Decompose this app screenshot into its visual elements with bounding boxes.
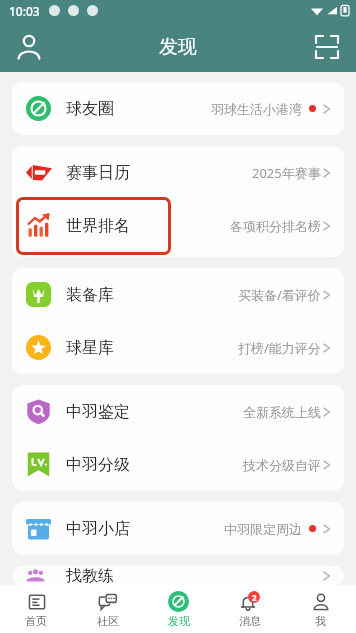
button[interactable]: 2 (214, 585, 285, 633)
button[interactable]: 赛事日历 (12, 146, 344, 199)
staticText: 球友圈 (66, 99, 114, 119)
button[interactable]: 装备库 (12, 268, 344, 321)
staticText: 找教练 (66, 566, 114, 585)
button[interactable]: 找教练 (12, 566, 344, 585)
button[interactable]: 发现 (143, 585, 214, 633)
staticText: 球星库 (66, 338, 114, 358)
button[interactable]: 首页 (0, 585, 72, 633)
staticText: 世界排名 (66, 216, 130, 236)
button[interactable]: 我 (285, 585, 356, 633)
staticText: 2025年赛事 (252, 164, 321, 182)
button[interactable]: 球星库 (12, 321, 344, 374)
staticText: 全新系统上线 (243, 404, 321, 420)
staticText: 发现 (159, 35, 197, 59)
button[interactable]: Profile (8, 26, 50, 68)
staticText: 装备库 (66, 285, 114, 305)
staticText: 10:03 (9, 3, 40, 19)
button[interactable]: Scan QR code (306, 26, 348, 68)
staticText: 各项积分排名榜 (230, 218, 321, 234)
staticText: 发现 (168, 614, 190, 628)
staticText: 中羽鉴定 (66, 402, 130, 422)
staticText: 打榜/能力评分 (238, 339, 321, 357)
staticText: 中羽小店 (66, 519, 130, 539)
staticText: 2 (252, 592, 257, 603)
button[interactable]: 球友圈 (12, 82, 344, 135)
button[interactable]: 中羽分级 (12, 438, 344, 491)
staticText: 技术分级自评 (243, 457, 321, 473)
staticText: 首页 (25, 614, 47, 628)
button[interactable]: 中羽小店 (12, 502, 344, 555)
staticText: 中羽限定周边 (224, 521, 302, 537)
button[interactable]: 社区 (72, 585, 143, 633)
button[interactable]: 中羽鉴定 (12, 385, 344, 438)
staticText: 羽球生活小港湾 (211, 101, 302, 117)
staticText: 中羽分级 (66, 455, 130, 475)
staticText: 买装备/看评价 (238, 286, 321, 304)
staticText: 我 (315, 614, 326, 628)
staticText: 赛事日历 (66, 163, 130, 183)
staticText: 消息 (239, 614, 261, 628)
staticText: 社区 (97, 614, 119, 628)
button[interactable]: 世界排名 (12, 199, 344, 252)
